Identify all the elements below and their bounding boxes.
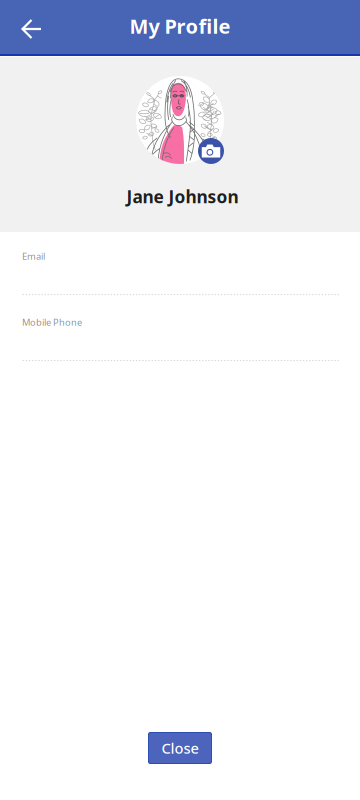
- staticText: Close: [161, 738, 198, 758]
- staticText: Email: [22, 250, 45, 262]
- staticText: Mobile Phone: [22, 316, 82, 328]
- staticText: My Profile: [129, 13, 230, 39]
- staticText: Jane Johnson: [126, 185, 238, 208]
- button[interactable]: Change profile photo: [198, 138, 224, 164]
- button[interactable]: Close: [148, 732, 212, 764]
- button[interactable]: Back: [0, 0, 55, 54]
